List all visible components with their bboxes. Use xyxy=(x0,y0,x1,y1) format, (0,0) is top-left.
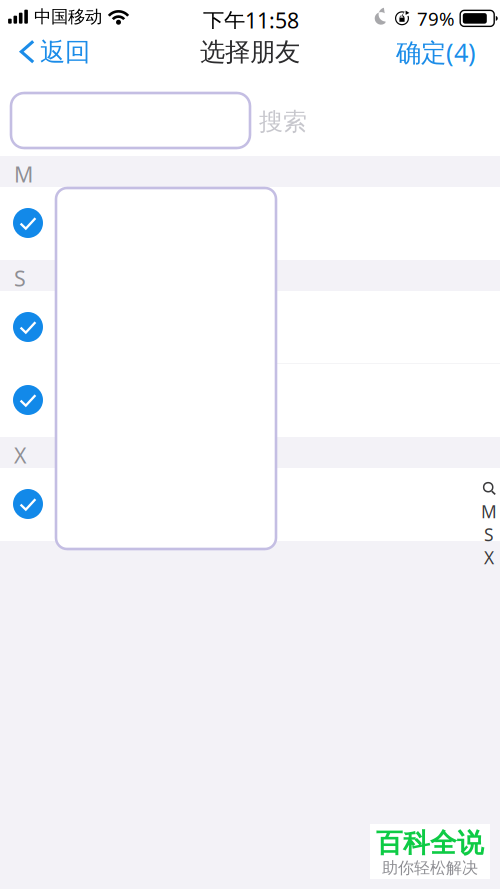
staticText: 百科全说 xyxy=(376,827,484,859)
button[interactable] xyxy=(0,364,500,437)
staticText: X xyxy=(14,441,27,469)
button[interactable]: M xyxy=(482,500,496,523)
staticText: M xyxy=(481,500,497,523)
button[interactable] xyxy=(0,187,500,260)
button[interactable] xyxy=(0,468,500,541)
staticText: M xyxy=(14,160,33,188)
staticText: 返回 xyxy=(40,36,90,67)
button[interactable]: 确定(4) xyxy=(384,29,500,75)
staticText: 选择朋友 xyxy=(200,36,300,67)
button[interactable]: 返回 xyxy=(0,29,102,75)
staticText: S xyxy=(484,523,494,546)
button[interactable] xyxy=(0,291,500,364)
staticText: 下午11:58 xyxy=(203,6,299,34)
button[interactable]: X xyxy=(482,546,496,569)
button[interactable]: S xyxy=(482,523,496,546)
staticText: S xyxy=(14,264,26,292)
staticText: 79% xyxy=(417,6,455,31)
staticText: 确定(4) xyxy=(396,35,476,69)
staticText: 搜索 xyxy=(259,107,307,136)
staticText: 中国移动 xyxy=(34,6,102,27)
staticText: 助你轻松解决 xyxy=(382,858,478,878)
button[interactable] xyxy=(11,93,250,148)
button[interactable]: Search xyxy=(482,477,496,500)
staticText: X xyxy=(484,546,494,569)
